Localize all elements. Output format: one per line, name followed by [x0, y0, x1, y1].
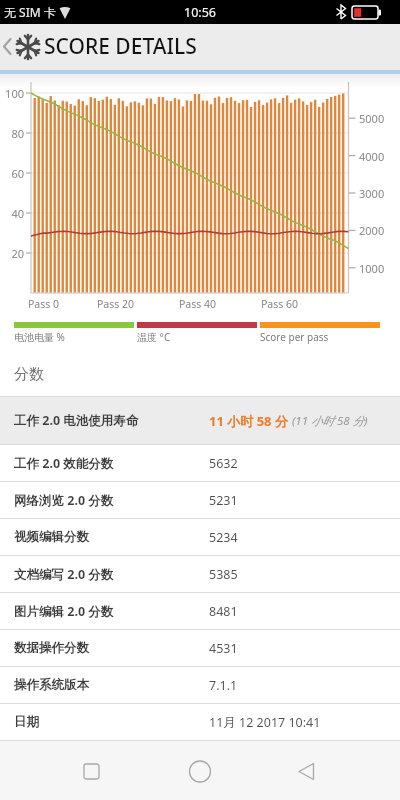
staticText: 60 [11, 166, 24, 181]
staticText: 80 [11, 126, 24, 141]
staticText: 1000 [359, 261, 385, 276]
staticText: 4000 [359, 149, 385, 164]
staticText: 5234 [209, 529, 238, 546]
staticText: 2000 [359, 223, 385, 238]
button[interactable]: 工作 2.0 效能分数 [0, 445, 400, 481]
staticText: 日期 [14, 714, 39, 730]
staticText: Pass 20 [97, 297, 135, 311]
staticText: Pass 60 [261, 297, 299, 311]
button[interactable]: 网络浏览 2.0 分数 [0, 482, 400, 518]
staticText: 操作系统版本 [14, 677, 89, 693]
button[interactable]: 图片编辑 2.0 分数 [0, 593, 400, 629]
staticText: Pass 0 [28, 297, 60, 311]
staticText: 5231 [209, 492, 238, 509]
button[interactable]: 日期 [0, 704, 400, 740]
staticText: 无 SIM 卡 [4, 4, 56, 20]
button[interactable] [267, 741, 400, 800]
staticText: 视频编辑分数 [14, 529, 89, 545]
staticText: 电池电量 % [14, 330, 65, 344]
button[interactable]: 数据操作分数 [0, 630, 400, 666]
button[interactable]: 文档编写 2.0 分数 [0, 556, 400, 592]
staticText: 工作 2.0 效能分数 [14, 455, 114, 472]
staticText: 数据操作分数 [14, 640, 89, 656]
staticText: 8481 [209, 603, 238, 620]
button[interactable]: 工作 2.0 电池使用寿命 [0, 397, 400, 444]
button[interactable]: 视频编辑分数 [0, 519, 400, 555]
button[interactable] [0, 24, 16, 70]
staticText: 10:56 [184, 4, 216, 21]
staticText: 5000 [359, 111, 385, 126]
staticText: (11 小时 58 分) [292, 413, 368, 429]
staticText: 分数 [14, 365, 44, 384]
staticText: 40 [11, 206, 24, 221]
staticText: 工作 2.0 电池使用寿命 [14, 412, 139, 429]
staticText: Score per pass [260, 330, 329, 344]
button[interactable]: 操作系统版本 [0, 667, 400, 703]
staticText: 图片编辑 2.0 分数 [14, 603, 114, 620]
staticText: 文档编写 2.0 分数 [14, 566, 114, 583]
staticText: 4531 [209, 640, 238, 657]
staticText: 11月 12 2017 10:41 [209, 714, 321, 731]
staticText: SCORE DETAILS [44, 32, 197, 61]
staticText: 温度 °C [137, 330, 171, 344]
staticText: 网络浏览 2.0 分数 [14, 492, 114, 509]
button[interactable] [0, 741, 134, 800]
staticText: 5632 [209, 455, 238, 472]
staticText: 5385 [209, 566, 238, 583]
staticText: 3000 [359, 186, 385, 201]
staticText: 100 [5, 86, 24, 101]
staticText: 7.1.1 [209, 677, 238, 694]
staticText: 11 小时 58 分 [209, 412, 292, 430]
button[interactable] [134, 741, 267, 800]
staticText: 20 [11, 246, 24, 261]
staticText: Pass 40 [179, 297, 217, 311]
